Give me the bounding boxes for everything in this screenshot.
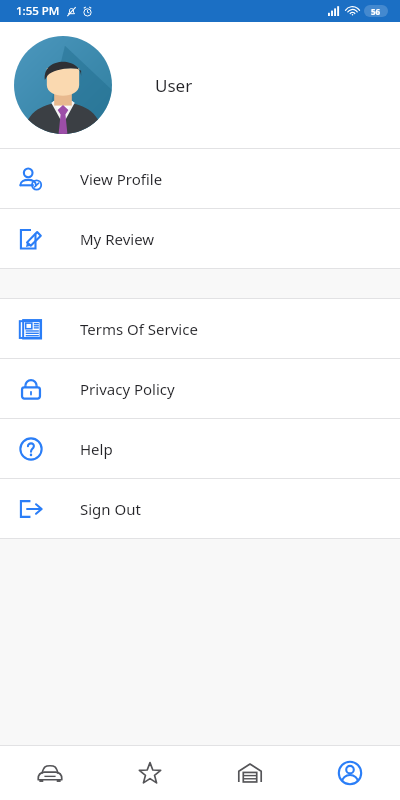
staticText: Help: [80, 439, 113, 459]
staticText: View Profile: [80, 169, 163, 189]
button[interactable]: Terms Of Service: [0, 299, 400, 358]
staticText: Terms Of Service: [80, 319, 198, 339]
staticText: 1:55 PM: [16, 3, 60, 19]
button[interactable]: Garage: [200, 746, 300, 800]
button[interactable]: View Profile: [0, 149, 400, 208]
staticText: User: [155, 74, 193, 97]
button[interactable]: Privacy Policy: [0, 359, 400, 418]
button[interactable]: Cars: [0, 746, 100, 800]
button[interactable]: Help: [0, 419, 400, 478]
staticText: Sign Out: [80, 499, 141, 519]
staticText: My Review: [80, 229, 155, 249]
button[interactable]: Sign Out: [0, 479, 400, 538]
button[interactable]: My Review: [0, 209, 400, 268]
button[interactable]: User: [0, 22, 400, 148]
staticText: Privacy Policy: [80, 379, 175, 399]
staticText: 56: [371, 6, 381, 17]
button[interactable]: Favorites: [100, 746, 200, 800]
button[interactable]: Profile: [300, 746, 400, 800]
